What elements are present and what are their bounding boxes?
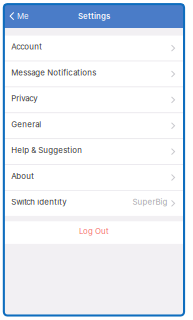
staticText: About [11,171,34,181]
staticText: Privacy [11,94,37,103]
staticText: General [11,120,41,129]
staticText: Settings [78,11,110,21]
staticText: Switch identity [11,197,66,207]
button[interactable]: About [4,165,184,190]
staticText: Message Notifications [11,68,96,77]
button[interactable]: Log Out [4,221,184,244]
button[interactable]: Me [4,4,36,28]
button[interactable]: Account [4,36,184,61]
staticText: SuperBig [132,197,167,207]
button[interactable]: Switch identity [4,191,184,216]
button[interactable]: Help & Suggestion [4,139,184,164]
button[interactable]: Message Notifications [4,61,184,87]
staticText: Account [11,42,42,51]
button[interactable]: General [4,113,184,138]
staticText: Help & Suggestion [11,145,82,155]
staticText: Log Out [79,226,109,236]
button[interactable]: Privacy [4,87,184,112]
staticText: Me [17,11,29,21]
